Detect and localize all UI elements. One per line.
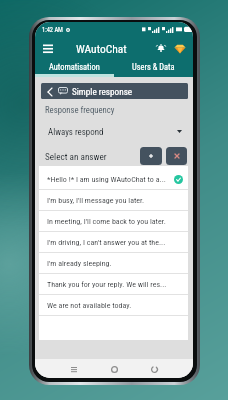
staticText: WAutoChat: [76, 42, 127, 55]
button[interactable]: *Hello !* I am using WAutoChat to a...: [39, 169, 188, 190]
button[interactable]: Thank you for your reply. We will res...: [39, 274, 188, 295]
button[interactable]: Recent apps: [66, 361, 82, 377]
button[interactable]: Always respond: [35, 125, 193, 138]
staticText: Simple response: [72, 86, 133, 97]
button[interactable]: Menu: [41, 41, 55, 55]
button[interactable]: Home: [106, 361, 122, 377]
button[interactable]: I'm already sleeping.: [39, 253, 188, 274]
button[interactable]: We are not available today.: [39, 295, 188, 316]
button[interactable]: I'm driving, I can't answer you at the..…: [39, 232, 188, 253]
staticText: I'm already sleeping.: [47, 259, 112, 268]
staticText: I'm driving, I can't answer you at the..…: [47, 238, 166, 247]
button[interactable]: Add answer: [140, 147, 162, 165]
button[interactable]: Notifications: [154, 41, 168, 55]
staticText: Response frequency: [45, 105, 115, 115]
button[interactable]: Back: [44, 86, 55, 97]
staticText: Thank you for your reply. We will res...: [47, 280, 167, 289]
staticText: 1:42 AM: [42, 26, 63, 34]
staticText: Users & Data: [132, 62, 175, 72]
button[interactable]: Back: [146, 361, 162, 377]
button[interactable]: Premium: [172, 41, 187, 56]
staticText: Always respond: [48, 127, 104, 137]
staticText: In meeting, I'll come back to you later.: [47, 217, 166, 226]
staticText: I'm busy, I'll message you later.: [47, 196, 145, 205]
staticText: We are not available today.: [47, 301, 132, 310]
staticText: Automatisation: [49, 62, 100, 72]
button[interactable]: Delete answer: [166, 147, 187, 165]
button[interactable]: I'm busy, I'll message you later.: [39, 190, 188, 211]
staticText: *Hello !* I am using WAutoChat to a...: [47, 175, 166, 184]
button[interactable]: In meeting, I'll come back to you later.: [39, 211, 188, 232]
button[interactable]: Users & Data: [114, 59, 193, 74]
staticText: Select an answer: [45, 151, 107, 162]
button[interactable]: Automatisation: [35, 59, 114, 74]
